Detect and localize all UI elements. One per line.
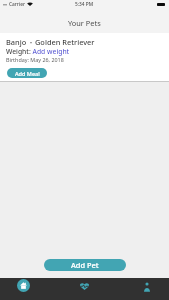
staticText: Golden Retriever xyxy=(35,37,95,47)
staticText: Your Pets xyxy=(68,18,101,28)
staticText: Carrier xyxy=(9,1,25,8)
button[interactable]: Add Pet xyxy=(44,259,126,271)
button[interactable]: Home xyxy=(0,278,56,300)
staticText: Banjo xyxy=(6,37,27,47)
button[interactable]: Profile xyxy=(112,278,169,300)
staticText: Add Meal xyxy=(15,70,40,77)
staticText: Weight: Add weight xyxy=(6,47,70,56)
staticText: 5:34 PM xyxy=(75,1,94,8)
staticText: Add Pet xyxy=(71,260,99,270)
button[interactable]: Health xyxy=(56,278,112,300)
staticText: Birthday: May 26, 2018 xyxy=(6,56,64,63)
button[interactable]: Add Meal xyxy=(7,68,47,78)
